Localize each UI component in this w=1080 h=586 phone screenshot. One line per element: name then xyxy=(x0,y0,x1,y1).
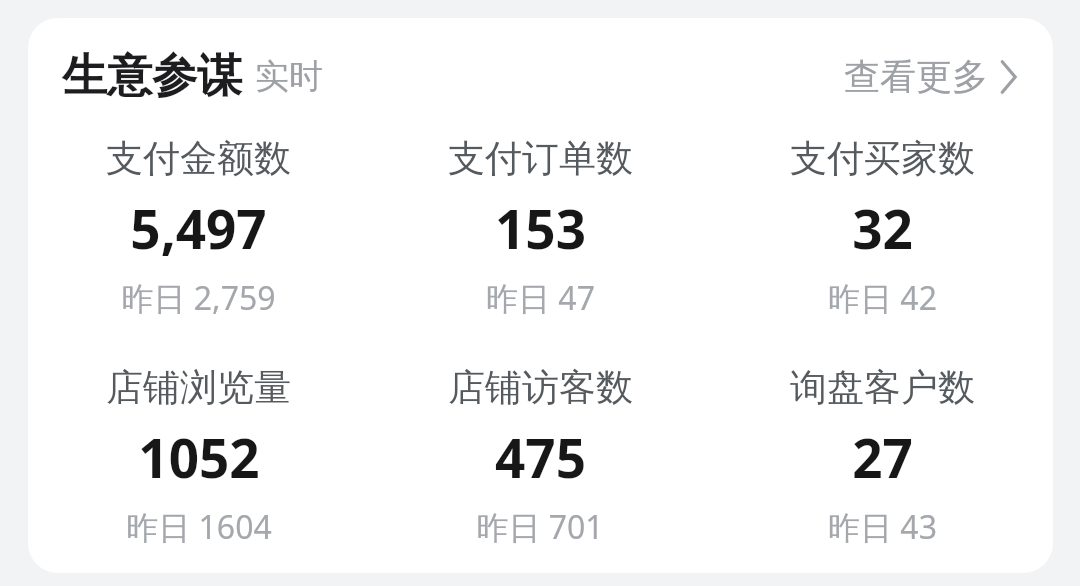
staticText: 昨日 1604 xyxy=(126,505,272,549)
staticText: 支付买家数 xyxy=(790,135,975,182)
staticText: 支付订单数 xyxy=(448,135,633,182)
staticText: 32 xyxy=(852,192,913,264)
staticText: 昨日 701 xyxy=(476,505,604,549)
staticText: 支付金额数 xyxy=(106,135,291,182)
button[interactable]: 支付买家数 xyxy=(711,135,1053,320)
staticText: 153 xyxy=(495,192,586,264)
button[interactable]: 询盘客户数 xyxy=(711,364,1053,549)
staticText: 昨日 43 xyxy=(828,505,937,549)
button[interactable]: 查看更多 xyxy=(844,54,1020,99)
staticText: 昨日 42 xyxy=(828,276,937,320)
staticText: 查看更多 xyxy=(844,54,988,99)
button[interactable]: 支付金额数 xyxy=(28,135,369,320)
staticText: 店铺访客数 xyxy=(448,364,633,411)
button[interactable]: 店铺浏览量 xyxy=(28,364,369,549)
staticText: 27 xyxy=(852,421,913,493)
staticText: 昨日 2,759 xyxy=(121,276,276,320)
staticText: 生意参谋 xyxy=(62,48,242,105)
staticText: 昨日 47 xyxy=(486,276,595,320)
staticText: 5,497 xyxy=(130,192,267,264)
staticText: 询盘客户数 xyxy=(790,364,975,411)
staticText: 475 xyxy=(495,421,586,493)
button[interactable]: 店铺访客数 xyxy=(369,364,711,549)
staticText: 实时 xyxy=(255,55,323,98)
staticText: 1052 xyxy=(138,421,260,493)
button[interactable]: 支付订单数 xyxy=(369,135,711,320)
staticText: 店铺浏览量 xyxy=(106,364,291,411)
